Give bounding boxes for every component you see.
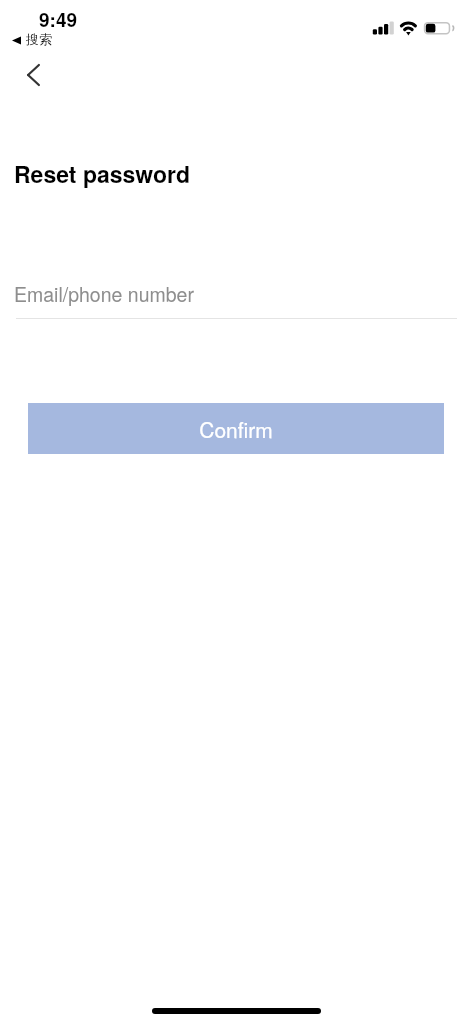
staticText: 9:49 xyxy=(39,6,78,33)
button[interactable]: Email/phone number xyxy=(16,275,457,319)
staticText: Confirm xyxy=(199,414,273,444)
button[interactable]: Confirm xyxy=(28,403,444,454)
button[interactable]: Back xyxy=(13,54,54,95)
staticText: Reset password xyxy=(14,157,191,190)
staticText: Email/phone number xyxy=(14,280,194,308)
button[interactable]: 搜索 xyxy=(12,32,52,48)
staticText: 搜索 xyxy=(26,31,52,47)
